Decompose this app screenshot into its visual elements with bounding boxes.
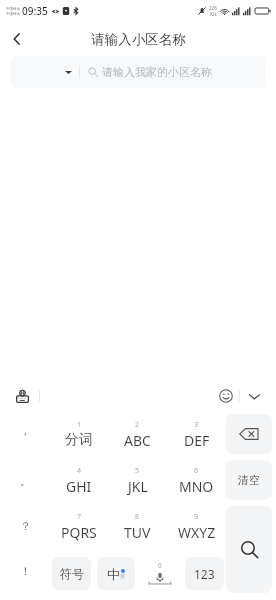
button[interactable]: Back <box>0 22 34 56</box>
button[interactable]: ！ <box>0 551 50 591</box>
staticText: 英 <box>120 573 125 579</box>
button[interactable]: Space <box>141 550 179 596</box>
staticText: 符号 <box>60 566 84 581</box>
staticText: JKL <box>128 477 148 496</box>
staticText: 3 <box>194 420 199 430</box>
button[interactable]: Emoji <box>213 383 239 409</box>
button[interactable]: 4 <box>50 458 108 504</box>
staticText: 4 <box>77 466 82 476</box>
staticText: 中 <box>107 566 120 582</box>
other: Backspace <box>239 427 259 441</box>
staticText: 0 <box>158 561 162 570</box>
staticText: PQRS <box>61 523 97 542</box>
staticText: 8 <box>135 512 140 522</box>
staticText: 中国移动 <box>6 12 20 16</box>
staticText: 中国移动 <box>6 7 20 11</box>
staticText: ABC <box>124 431 151 450</box>
staticText: ？ <box>20 519 31 533</box>
button[interactable]: Backspace <box>226 414 272 454</box>
button[interactable]: 8 <box>108 504 167 550</box>
staticText: 2 <box>135 420 140 430</box>
staticText: 请输入我家的小区名称 <box>102 65 212 79</box>
staticText: TUV <box>124 523 151 542</box>
button[interactable]: 7 <box>50 504 108 550</box>
button[interactable]: Search <box>226 506 272 593</box>
button[interactable]: 2 <box>108 411 167 458</box>
staticText: MNO <box>179 477 214 496</box>
staticText: ' <box>24 429 27 444</box>
button[interactable]: 符号 <box>52 557 91 590</box>
other: Search <box>240 540 259 559</box>
button[interactable]: Input languages <box>10 384 34 408</box>
button[interactable]: 。 <box>0 461 50 501</box>
button[interactable]: 3 <box>167 411 226 458</box>
button[interactable]: 中 <box>97 557 135 590</box>
button[interactable]: 5 <box>108 458 167 504</box>
staticText: DEF <box>184 431 210 450</box>
button[interactable]: ' <box>0 416 50 456</box>
staticText: 请输入小区名称 <box>91 31 186 48</box>
staticText: 123 <box>194 566 215 582</box>
button[interactable]: ？ <box>0 506 50 546</box>
staticText: K/s <box>210 11 217 17</box>
staticText: 。 <box>20 474 31 488</box>
button[interactable]: 123 <box>185 557 224 590</box>
staticText: ！ <box>20 564 31 578</box>
staticText: 7 <box>77 512 82 522</box>
button[interactable]: 1 <box>50 411 108 458</box>
staticText: 清空 <box>238 473 260 487</box>
staticText: 分词 <box>65 431 93 449</box>
staticText: 9 <box>194 512 199 522</box>
button[interactable]: 请输入我家的小区名称 <box>11 56 265 88</box>
button[interactable]: 9 <box>167 504 226 550</box>
staticText: WXYZ <box>178 523 216 542</box>
staticText: 09:35 <box>22 4 48 18</box>
button[interactable]: Hide keyboard <box>240 382 268 410</box>
staticText: 226 <box>209 5 217 11</box>
button[interactable]: 6 <box>167 458 226 504</box>
staticText: 6 <box>194 466 199 476</box>
staticText: 5 <box>135 466 140 476</box>
staticText: 1 <box>77 420 82 430</box>
button[interactable]: 清空 <box>226 460 272 500</box>
staticText: GHI <box>66 477 92 496</box>
